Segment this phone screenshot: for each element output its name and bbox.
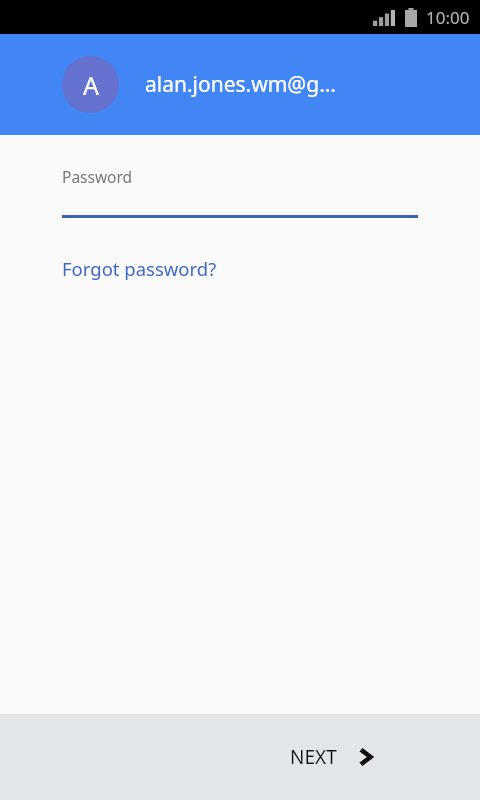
staticText: alan.jones.wm@g… — [145, 70, 336, 99]
staticText: Password — [62, 166, 133, 187]
button[interactable]: Account avatar — [62, 56, 119, 113]
button[interactable]: NEXT — [290, 714, 374, 800]
staticText: NEXT — [290, 744, 337, 770]
staticText: 10:00 — [426, 6, 470, 29]
staticText: A — [83, 68, 99, 102]
button[interactable]: Forgot password? — [62, 256, 217, 281]
staticText: Forgot password? — [62, 256, 217, 281]
